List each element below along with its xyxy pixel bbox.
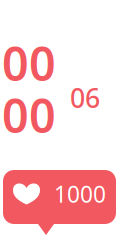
button[interactable]: 1000 — [3, 170, 116, 224]
staticText: 00 — [2, 84, 56, 146]
staticText: 06 — [70, 80, 100, 115]
staticText: 1000 — [54, 179, 106, 209]
staticText: 00 — [2, 32, 56, 94]
